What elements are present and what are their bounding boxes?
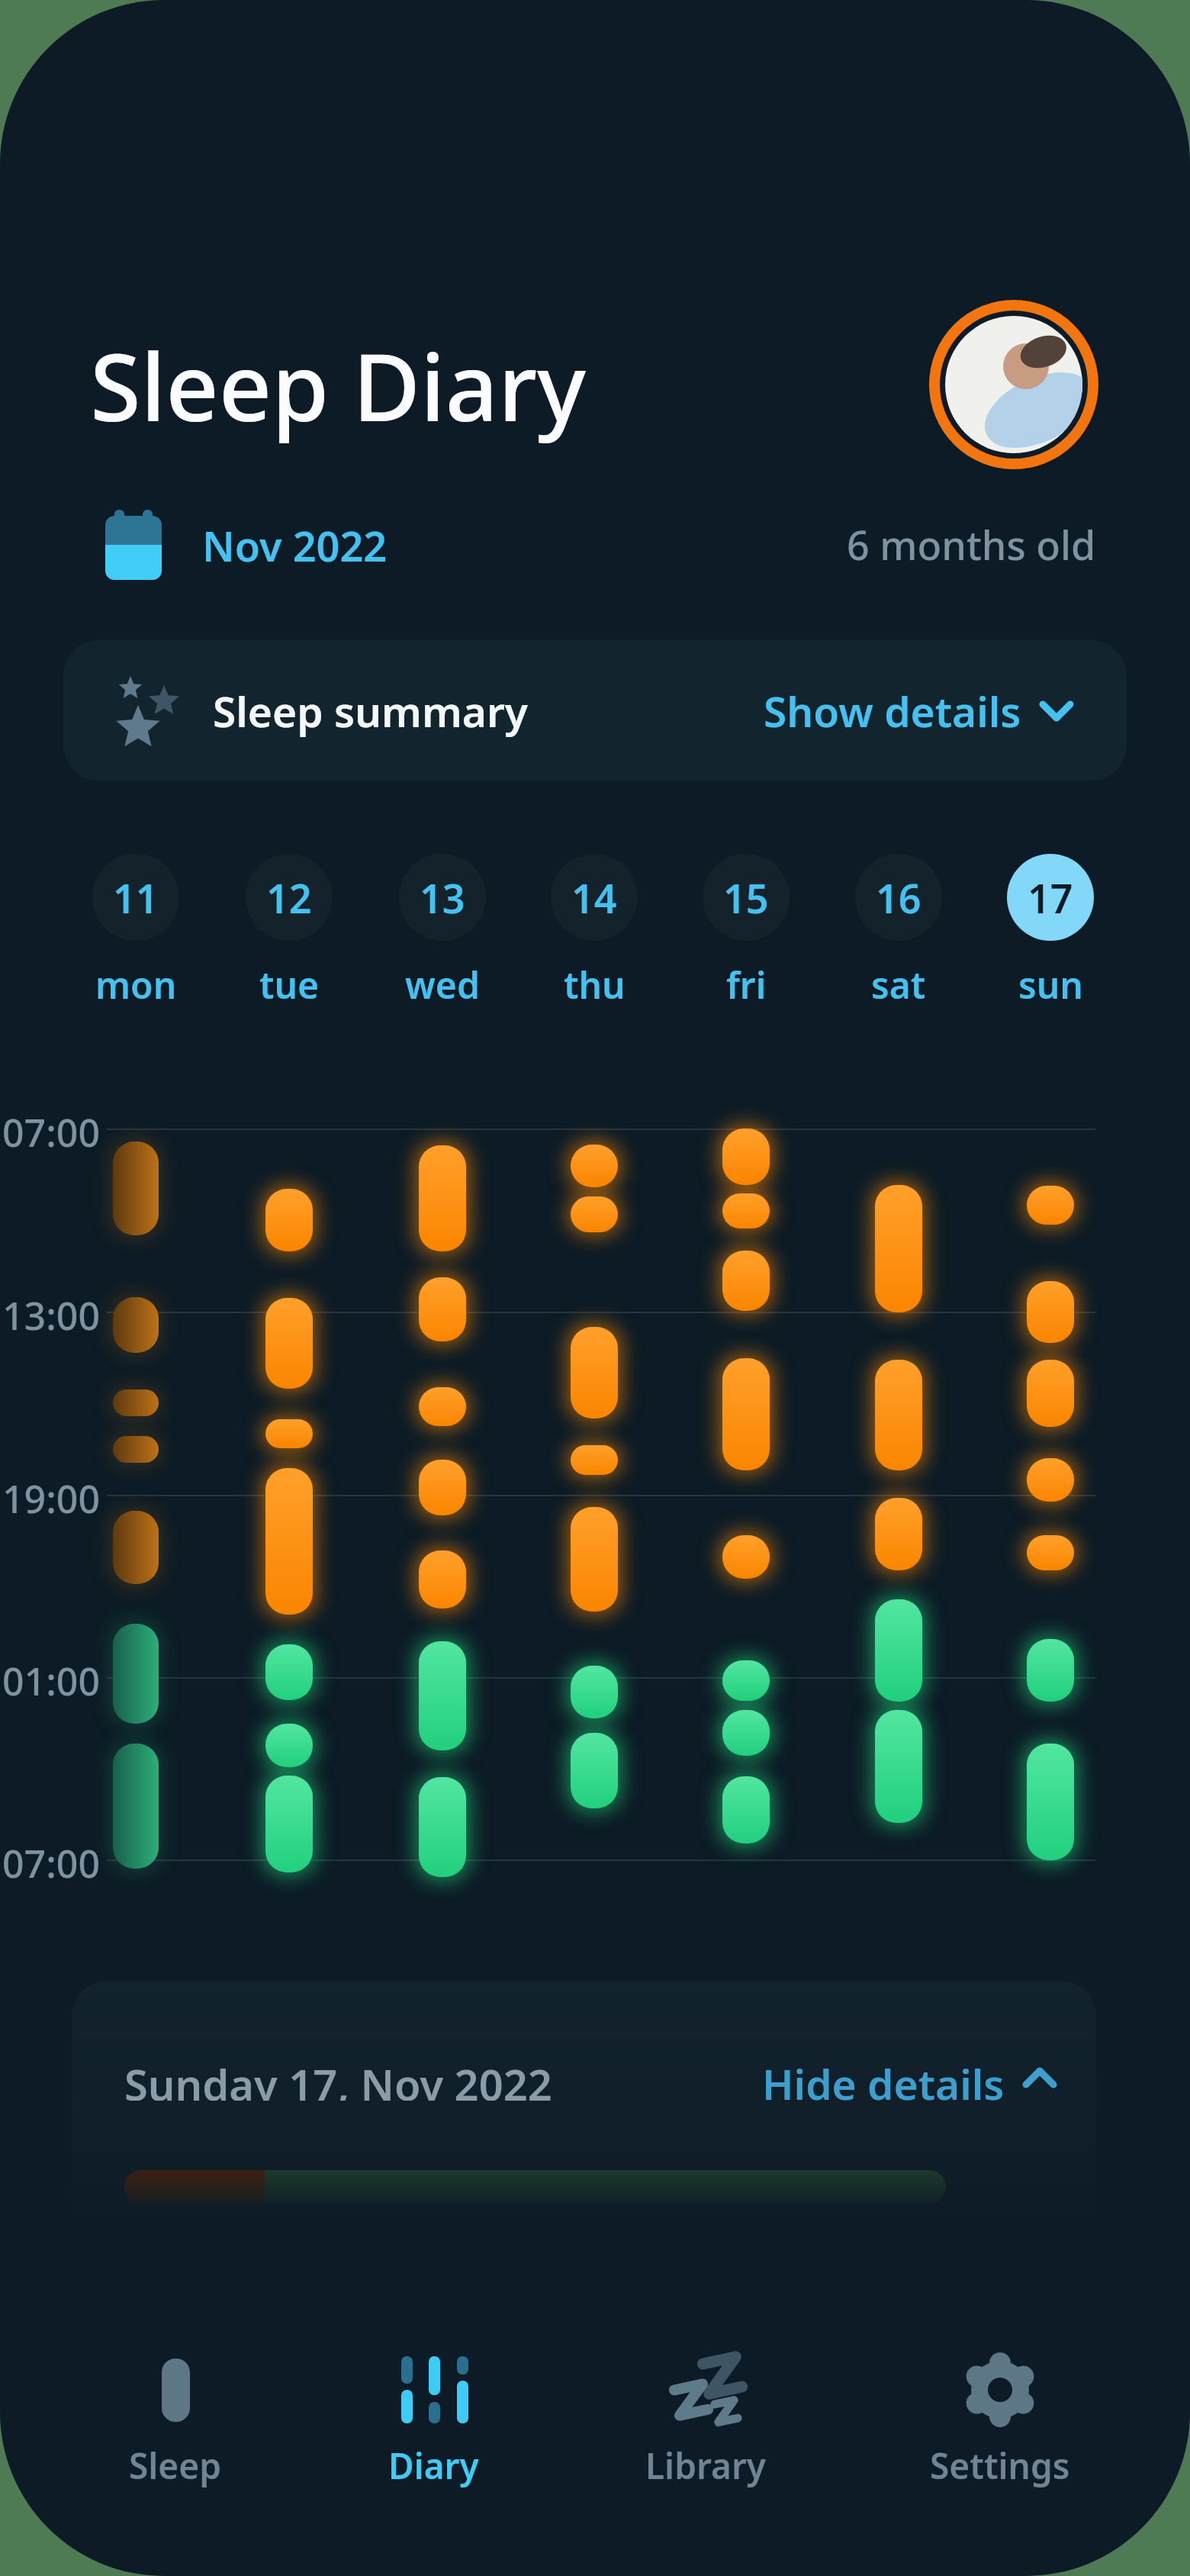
button[interactable]: Settings bbox=[924, 2335, 1076, 2503]
staticText: wed bbox=[405, 960, 480, 1007]
staticText: tue bbox=[259, 960, 320, 1007]
staticText: 19:00 bbox=[2, 1473, 100, 1518]
button[interactable]: 13 bbox=[399, 854, 486, 941]
staticText: 11 bbox=[113, 871, 159, 925]
staticText: Sleep summary bbox=[213, 682, 528, 739]
button[interactable] bbox=[928, 299, 1099, 470]
staticText: thu bbox=[564, 960, 626, 1007]
staticText: Settings bbox=[930, 2442, 1070, 2487]
button[interactable]: Sleep bbox=[98, 2335, 251, 2503]
staticText: 01:00 bbox=[2, 1655, 100, 1701]
button[interactable]: 17 bbox=[1007, 854, 1094, 941]
staticText: Library bbox=[645, 2442, 767, 2487]
staticText: fri bbox=[726, 960, 767, 1007]
staticText: 07:00 bbox=[2, 1106, 100, 1152]
staticText: Diary bbox=[388, 2442, 479, 2487]
button[interactable]: Diary bbox=[357, 2335, 510, 2503]
staticText: Sleep bbox=[129, 2442, 221, 2487]
staticText: Sunday 17, Nov 2022 bbox=[124, 2055, 552, 2101]
staticText: 12 bbox=[266, 871, 312, 925]
button[interactable]: 11 bbox=[92, 854, 179, 941]
staticText: 17 bbox=[1028, 871, 1073, 925]
button[interactable]: 16 bbox=[855, 854, 942, 941]
button[interactable]: Sleep summary bbox=[63, 640, 1127, 781]
staticText: 16 bbox=[876, 871, 921, 925]
staticText: 6 months old bbox=[847, 517, 1096, 563]
button[interactable]: Sunday 17, Nov 2022 bbox=[72, 1981, 1096, 2233]
staticText: 13:00 bbox=[2, 1290, 100, 1335]
staticText: 15 bbox=[723, 871, 769, 925]
button[interactable]: Library bbox=[629, 2335, 782, 2503]
staticText: sat bbox=[871, 960, 926, 1007]
button[interactable]: 15 bbox=[703, 854, 790, 941]
staticText: Sleep Diary bbox=[90, 323, 587, 449]
button[interactable]: 12 bbox=[246, 854, 333, 941]
button[interactable]: 14 bbox=[551, 854, 638, 941]
staticText: 07:00 bbox=[2, 1837, 100, 1883]
staticText: Hide details bbox=[762, 2055, 1005, 2101]
button[interactable]: Nov 2022 bbox=[92, 500, 412, 584]
staticText: 14 bbox=[571, 871, 617, 925]
staticText: mon bbox=[95, 960, 177, 1007]
staticText: sun bbox=[1018, 960, 1083, 1007]
staticText: Show details bbox=[764, 682, 1021, 739]
staticText: Nov 2022 bbox=[202, 517, 388, 563]
staticText: 13 bbox=[420, 871, 465, 925]
